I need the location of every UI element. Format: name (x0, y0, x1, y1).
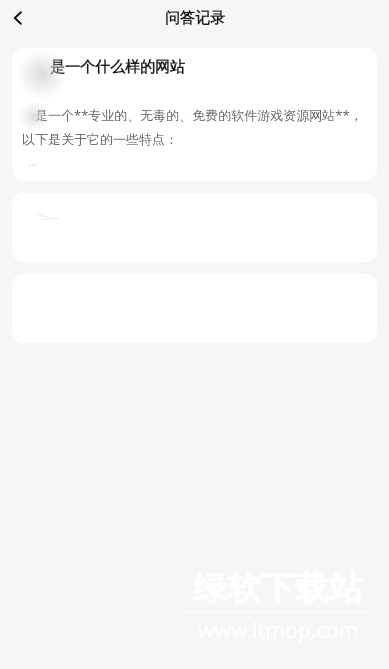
staticText: 是一个**专业的、无毒的、免费的软件游戏资源网站**，以下是关于它的一些特点： (22, 106, 365, 148)
button[interactable]: Back (2, 2, 34, 34)
staticText: 绿软下载站 (193, 567, 363, 610)
staticText: … (28, 154, 37, 169)
button[interactable]: 是一个什么样的网站 (12, 48, 377, 181)
staticText: 是一个什么样的网站 (50, 58, 185, 77)
staticText: 问答记录 (165, 9, 225, 28)
staticText: www.itmop.com (198, 616, 359, 645)
